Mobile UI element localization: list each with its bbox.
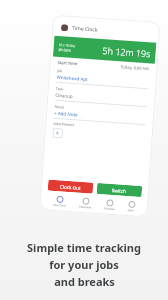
staticText: Job — [57, 68, 63, 73]
staticText: Today, 8:00 AM — [120, 64, 150, 71]
staticText: 5h 12m 19s — [102, 44, 151, 59]
staticText: Attachments — [53, 121, 74, 127]
staticText: Start Time — [57, 60, 78, 66]
staticText: Whitehead Apt — [56, 74, 89, 82]
staticText: Notes — [54, 104, 65, 109]
button[interactable]: Time Clock — [50, 194, 69, 209]
staticText: Simple time tracking — [27, 240, 141, 255]
staticText: Timesheet — [78, 205, 92, 209]
staticText: and breaks — [54, 274, 115, 289]
staticText: Schedule — [103, 206, 116, 210]
staticText: Time Clock — [53, 203, 67, 207]
button[interactable]: More — [125, 199, 137, 214]
staticText: Cleanup — [55, 92, 74, 99]
staticText: Hrs Today — [59, 42, 76, 48]
staticText: 8h 00m — [58, 47, 72, 53]
staticText: More — [127, 208, 135, 212]
staticText: for your jobs — [49, 257, 119, 272]
staticText: + Add Note — [54, 110, 78, 117]
button[interactable]: Schedule — [101, 197, 118, 212]
staticText: Clock Out — [60, 183, 81, 191]
button[interactable]: Switch — [97, 183, 142, 197]
staticText: Time Clock — [72, 25, 98, 34]
button[interactable]: Clock Out — [48, 180, 93, 194]
button[interactable]: Timesheet — [76, 196, 94, 211]
staticText: Switch — [112, 187, 127, 194]
staticText: + — [55, 129, 60, 137]
staticText: Task — [56, 86, 64, 91]
